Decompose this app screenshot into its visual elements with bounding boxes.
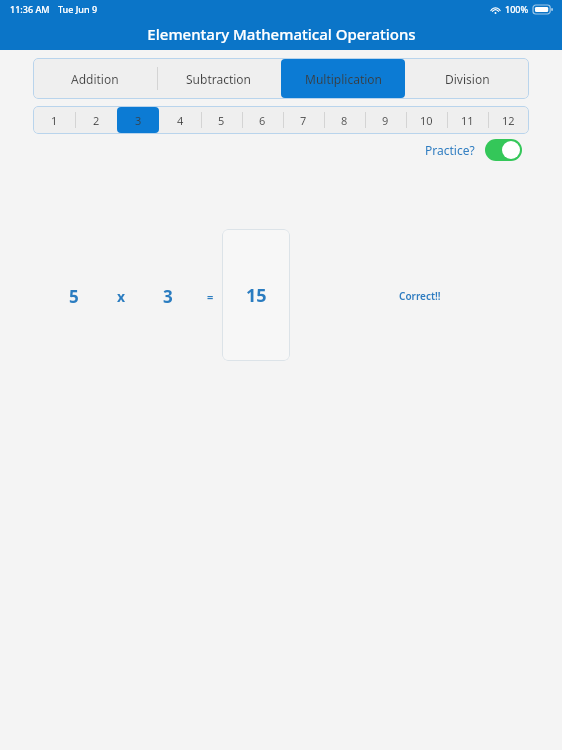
staticText: 1 <box>51 113 58 128</box>
button[interactable]: 11 <box>447 106 488 134</box>
button[interactable]: 6 <box>242 106 283 134</box>
staticText: 2 <box>93 113 100 128</box>
staticText: 10 <box>420 113 433 128</box>
staticText: 15 <box>246 283 267 308</box>
staticText: 3 <box>135 113 142 128</box>
staticText: 8 <box>341 113 348 128</box>
staticText: Multiplication <box>305 71 382 87</box>
button[interactable]: 12 <box>488 106 529 134</box>
staticText: Practice? <box>425 142 475 158</box>
staticText: 12 <box>502 113 515 128</box>
button[interactable]: 5 <box>201 106 242 134</box>
button[interactable]: Practice mode, on <box>485 139 522 161</box>
button[interactable]: 1 <box>33 106 75 134</box>
button[interactable]: 8 <box>324 106 365 134</box>
staticText: = <box>207 289 214 304</box>
button[interactable]: 7 <box>283 106 324 134</box>
staticText: 11 <box>461 113 474 128</box>
button[interactable]: Division <box>405 58 529 99</box>
button[interactable]: Answer field <box>222 229 290 361</box>
staticText: Division <box>445 71 490 87</box>
staticText: 100% <box>505 3 529 15</box>
button[interactable]: 3 <box>117 107 159 133</box>
button[interactable]: 10 <box>406 106 447 134</box>
staticText: 11:36 AM <box>10 3 50 15</box>
staticText: 9 <box>382 113 389 128</box>
button[interactable]: Multiplication <box>281 59 405 98</box>
staticText: Tue Jun 9 <box>58 3 98 15</box>
staticText: Subtraction <box>186 71 252 87</box>
staticText: Addition <box>71 71 119 87</box>
staticText: 6 <box>259 113 266 128</box>
staticText: x <box>117 287 126 306</box>
staticText: 3 <box>163 285 173 308</box>
staticText: Correct!! <box>399 289 441 303</box>
button[interactable]: Practice? <box>425 139 522 161</box>
button[interactable]: 4 <box>159 106 201 134</box>
staticText: 5 <box>218 113 225 128</box>
button[interactable]: 9 <box>365 106 406 134</box>
button[interactable]: 2 <box>75 106 117 134</box>
button[interactable]: Subtraction <box>157 58 281 99</box>
staticText: 7 <box>300 113 307 128</box>
button[interactable]: Addition <box>33 58 157 99</box>
staticText: 4 <box>177 113 184 128</box>
staticText: 5 <box>69 285 79 308</box>
staticText: Elementary Mathematical Operations <box>147 24 416 44</box>
